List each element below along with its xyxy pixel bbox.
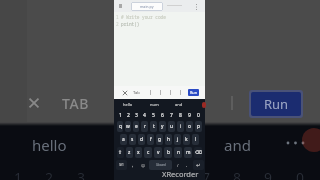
- button[interactable]: 8: [176, 110, 185, 120]
- button[interactable]: Emoji: [139, 160, 147, 170]
- staticText: r: [144, 123, 146, 130]
- staticText: q: [119, 123, 122, 130]
- staticText: 3: [77, 168, 86, 180]
- button[interactable]: Close keyboard: [122, 90, 128, 96]
- staticText: ☺: [141, 163, 146, 168]
- staticText: Gboard: [156, 163, 166, 167]
- staticText: ,: [132, 162, 134, 168]
- staticText: d: [140, 136, 143, 143]
- button[interactable]: Run: [249, 90, 303, 118]
- button[interactable]: Period: [183, 160, 191, 170]
- staticText: s: [131, 136, 134, 143]
- button[interactable]: num: [145, 99, 163, 110]
- staticText: j: [177, 136, 179, 143]
- button[interactable]: q: [117, 121, 123, 132]
- button[interactable]: 5: [149, 110, 158, 120]
- button[interactable]: Comma: [129, 160, 137, 170]
- staticText: w: [126, 123, 130, 130]
- button[interactable]: 1: [116, 110, 124, 120]
- button[interactable]: k: [183, 134, 190, 145]
- staticText: ↵: [196, 162, 201, 168]
- staticText: u: [170, 123, 173, 130]
- staticText: t: [153, 123, 155, 130]
- staticText: !#1: [119, 163, 124, 167]
- staticText: g: [158, 136, 161, 143]
- button[interactable]: o: [186, 121, 193, 132]
- button[interactable]: ⇧: [117, 147, 124, 158]
- button[interactable]: x: [135, 147, 142, 158]
- button[interactable]: g: [156, 134, 163, 145]
- staticText: Run: [264, 95, 289, 113]
- button[interactable]: TAB: [62, 94, 90, 113]
- button[interactable]: h: [165, 134, 172, 145]
- button[interactable]: e: [133, 121, 139, 132]
- staticText: and: [224, 135, 251, 155]
- button[interactable]: Run: [188, 89, 199, 96]
- staticText: 2: [127, 112, 130, 119]
- button[interactable]: l: [192, 134, 199, 145]
- staticText: c: [147, 149, 150, 156]
- button[interactable]: Tab: [133, 90, 140, 96]
- button[interactable]: Enter: [193, 160, 204, 170]
- button[interactable]: d: [138, 134, 145, 145]
- staticText: 2: [45, 168, 54, 180]
- button[interactable]: z: [126, 147, 133, 158]
- button[interactable]: c: [144, 147, 152, 158]
- button[interactable]: Space: [149, 160, 172, 170]
- button[interactable]: ⌫: [194, 147, 202, 158]
- button[interactable]: f: [147, 134, 154, 145]
- button[interactable]: 3: [132, 110, 140, 120]
- staticText: x: [137, 149, 140, 156]
- button[interactable]: i: [177, 121, 184, 132]
- button[interactable]: Close: [26, 95, 42, 111]
- button[interactable]: v: [154, 147, 162, 158]
- staticText: # Write your code: [121, 14, 166, 20]
- button[interactable]: w: [125, 121, 131, 132]
- button[interactable]: main.py: [131, 2, 163, 11]
- staticText: y: [161, 123, 164, 130]
- button[interactable]: More options: [192, 2, 200, 11]
- staticText: Run: [190, 90, 198, 95]
- staticText: 7: [170, 112, 173, 119]
- staticText: 1: [14, 168, 23, 180]
- staticText: i: [180, 123, 182, 130]
- button[interactable]: and: [170, 99, 188, 110]
- staticText: 0: [197, 112, 200, 119]
- button[interactable]: 0: [194, 110, 203, 120]
- button[interactable]: t: [150, 121, 157, 132]
- staticText: 1: [116, 14, 119, 20]
- button[interactable]: Slash: [174, 160, 182, 170]
- button[interactable]: 6: [158, 110, 167, 120]
- button[interactable]: r: [141, 121, 148, 132]
- button[interactable]: 2: [124, 110, 132, 120]
- button[interactable]: m: [184, 147, 192, 158]
- staticText: 9: [188, 112, 191, 119]
- button[interactable]: j: [174, 134, 181, 145]
- staticText: ⇧: [118, 150, 123, 156]
- button[interactable]: p: [195, 121, 202, 132]
- button[interactable]: b: [164, 147, 172, 158]
- staticText: main.py: [140, 4, 154, 9]
- button[interactable]: y: [159, 121, 166, 132]
- staticText: TAB: [62, 94, 90, 113]
- staticText: /: [177, 163, 179, 168]
- staticText: l: [195, 136, 197, 143]
- button[interactable]: a: [120, 134, 127, 145]
- staticText: 2: [116, 21, 119, 27]
- staticText: m: [186, 149, 191, 156]
- button[interactable]: 7: [167, 110, 176, 120]
- button[interactable]: 4: [140, 110, 149, 120]
- button[interactable]: hello: [119, 99, 137, 110]
- staticText: hello: [32, 135, 67, 155]
- button[interactable]: u: [168, 121, 175, 132]
- staticText: f: [150, 136, 152, 143]
- staticText: 0: [296, 168, 305, 180]
- staticText: k: [185, 136, 188, 143]
- staticText: 6: [161, 112, 164, 119]
- button[interactable]: !#1: [116, 160, 127, 170]
- button[interactable]: s: [129, 134, 136, 145]
- button[interactable]: 9: [185, 110, 194, 120]
- button[interactable]: n: [174, 147, 182, 158]
- staticText: hello: [123, 102, 133, 107]
